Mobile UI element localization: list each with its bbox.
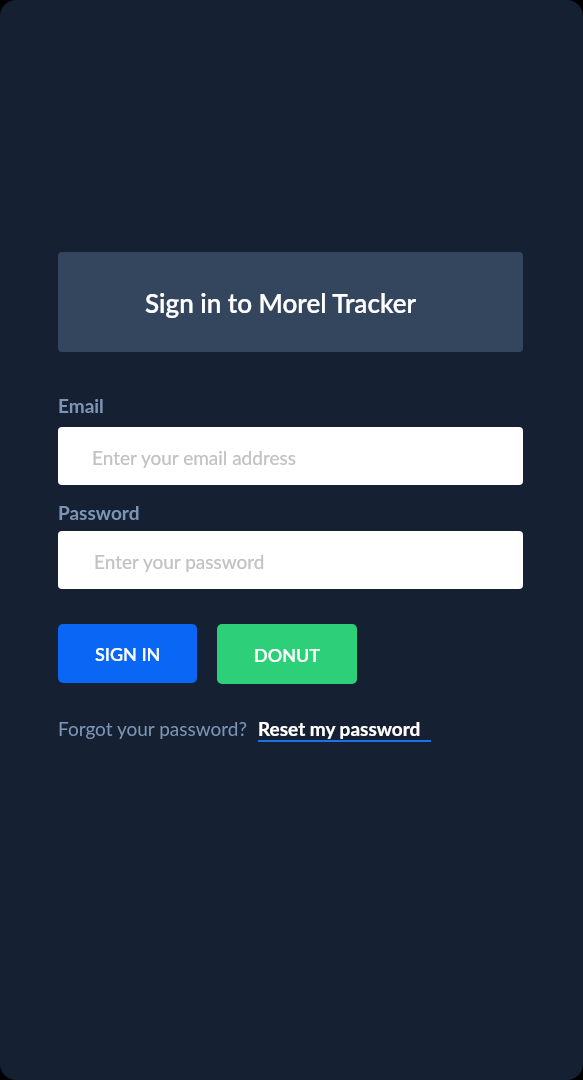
staticText: Reset my password <box>258 717 421 740</box>
button[interactable]: Enter your email address <box>58 427 523 485</box>
button[interactable]: SIGN IN <box>58 624 197 683</box>
staticText: Sign in to Morel Tracker <box>145 287 417 318</box>
staticText: Email <box>58 394 104 417</box>
staticText: SIGN IN <box>95 643 161 665</box>
staticText: DONUT <box>254 644 321 666</box>
button[interactable]: DONUT <box>217 624 357 684</box>
staticText: Enter your password <box>94 550 265 573</box>
button[interactable]: Enter your password <box>58 531 523 589</box>
staticText: Password <box>58 501 140 524</box>
button[interactable]: Reset my password <box>258 717 431 742</box>
staticText: Forgot your password? <box>58 717 247 740</box>
staticText: Enter your email address <box>92 446 296 469</box>
